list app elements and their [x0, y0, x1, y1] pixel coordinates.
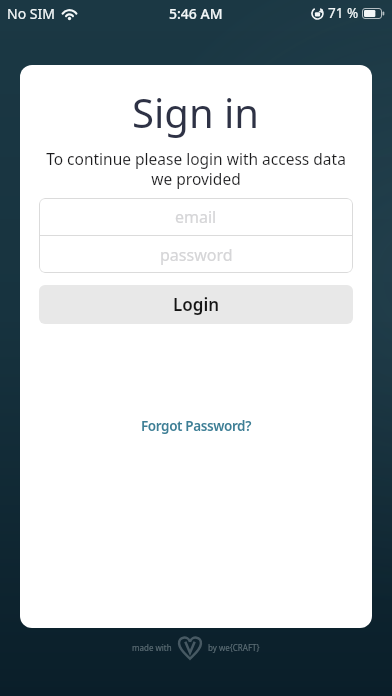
button[interactable]: email: [39, 198, 353, 235]
staticText: 5:46 AM: [169, 4, 223, 23]
staticText: 71 %: [328, 4, 359, 22]
staticText: No SIM: [7, 4, 55, 23]
staticText: Login: [173, 293, 220, 316]
staticText: by we{CRAFT}: [208, 642, 260, 653]
staticText: To continue please login with access dat…: [46, 148, 346, 189]
staticText: made with: [132, 642, 172, 653]
button[interactable]: password: [39, 236, 353, 273]
staticText: Sign in: [132, 85, 260, 139]
staticText: Forgot Password?: [141, 417, 251, 435]
staticText: email: [175, 206, 217, 228]
button[interactable]: Forgot Password?: [137, 413, 255, 439]
button[interactable]: Login: [39, 285, 353, 324]
staticText: password: [160, 244, 233, 266]
